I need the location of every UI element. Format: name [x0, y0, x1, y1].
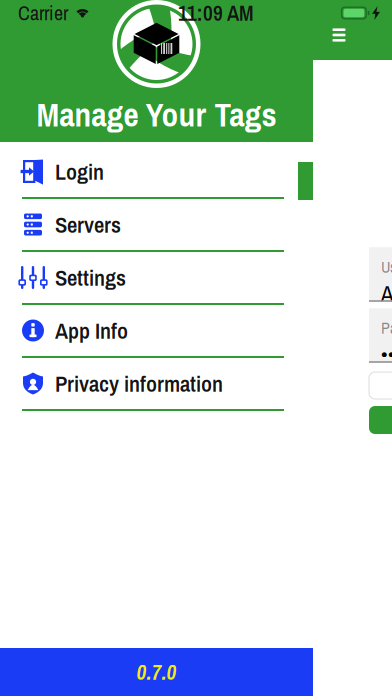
button[interactable]: 0.7.0 [0, 648, 313, 696]
staticText: 0.7.0 [136, 658, 176, 686]
button[interactable]: Privacy information [0, 358, 313, 411]
button[interactable]: Login [0, 146, 313, 199]
staticText: 11:09 AM [178, 0, 254, 27]
staticText: App Info [55, 315, 128, 346]
button[interactable]: Servers [0, 199, 313, 252]
staticText: Alice [381, 278, 392, 308]
button[interactable]: Menu [322, 20, 356, 50]
staticText: Settings [55, 262, 126, 293]
staticText: Username [381, 256, 392, 278]
staticText: •••••• [381, 339, 392, 369]
button[interactable]: App Info [0, 305, 313, 358]
staticText: Privacy information [55, 368, 223, 399]
staticText: Password [381, 317, 392, 339]
staticText: Servers [55, 209, 121, 240]
staticText: Login [55, 156, 104, 187]
staticText: Carrier [18, 0, 68, 26]
staticText: Manage Your Tags [36, 92, 276, 137]
button[interactable]: Settings [0, 252, 313, 305]
button[interactable]: Login [369, 406, 392, 434]
button[interactable]: Demo mode [369, 372, 392, 399]
